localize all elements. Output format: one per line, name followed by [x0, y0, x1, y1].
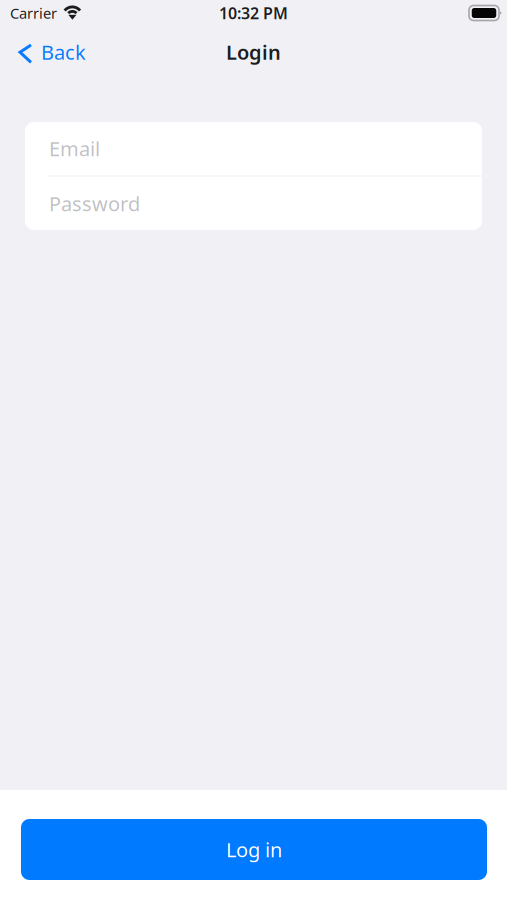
button[interactable]: Log in [21, 819, 487, 880]
staticText: Password [49, 190, 140, 217]
staticText: Carrier [10, 3, 57, 23]
button[interactable]: Email [25, 122, 482, 176]
staticText: 10:32 PM [219, 2, 288, 24]
staticText: Log in [226, 836, 282, 863]
staticText: Email [49, 135, 100, 162]
staticText: Login [226, 39, 281, 65]
staticText: Back [41, 39, 86, 65]
button[interactable]: Back [0, 26, 95, 78]
button[interactable]: Password [25, 176, 482, 230]
